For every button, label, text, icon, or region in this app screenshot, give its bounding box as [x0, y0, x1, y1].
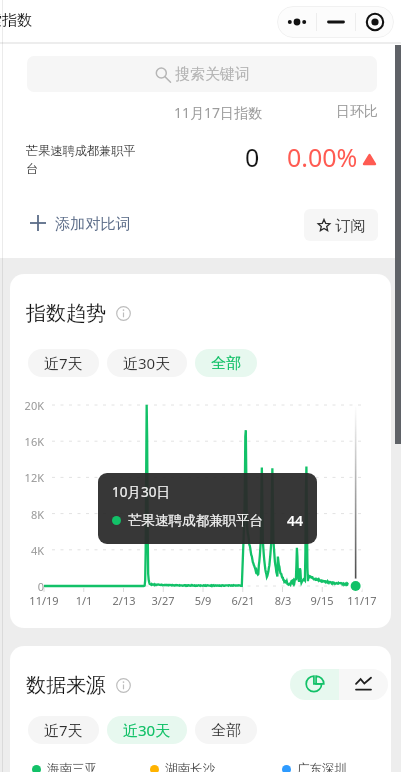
staticText: 数据来源 — [26, 673, 106, 698]
staticText: 搜索关键词 — [175, 65, 250, 84]
staticText: 16K — [14, 434, 44, 449]
button[interactable]: 全部 — [195, 716, 257, 744]
button[interactable]: Info — [116, 306, 131, 321]
staticText: 3/27 — [143, 593, 183, 608]
staticText: 5/9 — [183, 593, 223, 608]
staticText: 近30天 — [123, 353, 171, 373]
staticText: 指数趋势 — [26, 301, 106, 326]
button[interactable]: 近7天 — [28, 716, 99, 744]
button[interactable]: Info — [116, 678, 131, 693]
staticText: 近7天 — [44, 720, 83, 740]
button[interactable]: Line chart view — [339, 669, 388, 700]
button[interactable]: Close — [356, 6, 394, 38]
staticText: 2/13 — [104, 593, 144, 608]
staticText: 0 — [14, 579, 44, 594]
staticText: 1/1 — [64, 593, 104, 608]
staticText: 芒果速聘成都兼职平台 — [26, 143, 138, 176]
button[interactable]: 广东深圳 — [282, 761, 347, 772]
button[interactable]: 湖南长沙 — [150, 761, 215, 772]
staticText: 11/17 — [342, 593, 382, 608]
button[interactable]: 添加对比词 — [29, 208, 131, 238]
button[interactable]: 近7天 — [28, 349, 99, 377]
staticText: 广东深圳 — [297, 761, 347, 772]
staticText: 日环比 — [336, 103, 378, 121]
button[interactable]: 搜索关键词 — [27, 56, 377, 92]
staticText: 搜索指数 — [0, 11, 32, 30]
staticText: 11月17日指数 — [174, 103, 263, 122]
staticText: 8/3 — [263, 593, 303, 608]
button[interactable]: More — [277, 6, 316, 38]
staticText: 0.00% — [287, 140, 358, 174]
button[interactable]: 近30天 — [107, 349, 187, 377]
staticText: 10月30日 — [112, 483, 170, 501]
button[interactable]: 海南三亚 — [32, 761, 97, 772]
staticText: 12K — [14, 470, 44, 485]
button[interactable]: Pie chart view — [290, 669, 339, 700]
staticText: 全部 — [211, 354, 241, 373]
staticText: 芒果速聘成都兼职平台 — [128, 512, 263, 529]
staticText: 8K — [14, 507, 44, 522]
staticText: 全部 — [211, 721, 241, 740]
staticText: 20K — [14, 398, 44, 413]
staticText: 0 — [245, 140, 260, 174]
staticText: 近7天 — [44, 353, 83, 373]
staticText: 订阅 — [335, 216, 366, 235]
staticText: 9/15 — [302, 593, 342, 608]
staticText: 44 — [287, 511, 304, 530]
staticText: 湖南长沙 — [165, 761, 215, 772]
staticText: 11/19 — [24, 593, 64, 608]
staticText: 6/21 — [223, 593, 263, 608]
staticText: 近30天 — [123, 720, 171, 740]
button[interactable]: 订阅 — [304, 209, 378, 241]
staticText: 添加对比词 — [55, 214, 131, 233]
staticText: 海南三亚 — [47, 761, 97, 772]
button[interactable]: 近30天 — [107, 716, 187, 744]
staticText: 4K — [14, 543, 44, 558]
button[interactable]: Minimize — [317, 6, 355, 38]
button[interactable]: 全部 — [195, 349, 257, 377]
